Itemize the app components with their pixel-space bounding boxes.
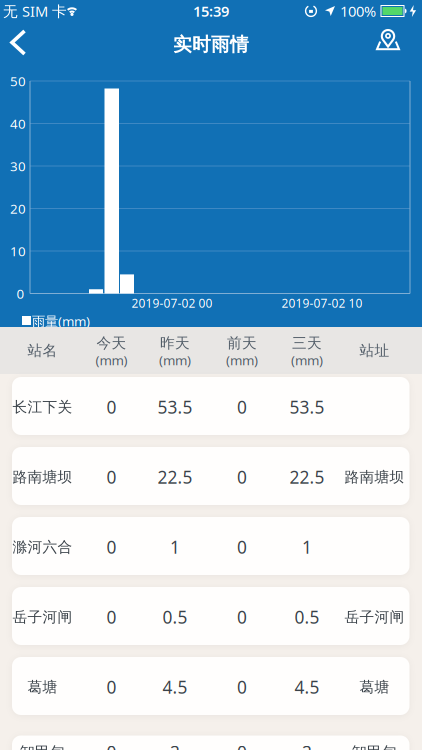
staticText: 三天: [292, 334, 322, 352]
staticText: 2: [302, 740, 312, 750]
staticText: 长江下关: [12, 398, 72, 416]
staticText: 53.5: [157, 395, 192, 418]
staticText: 2: [170, 740, 180, 750]
staticText: 22.5: [289, 465, 324, 488]
button[interactable]: 滁河六合: [12, 517, 409, 575]
staticText: 4.5: [162, 675, 187, 698]
staticText: 1: [170, 535, 180, 558]
staticText: 站名: [27, 341, 57, 359]
staticText: 50: [10, 72, 26, 90]
staticText: 雨量(mm): [32, 312, 90, 330]
button[interactable]: 长江下关: [12, 377, 409, 435]
staticText: 0: [237, 605, 247, 628]
staticText: 滁河六合: [12, 538, 72, 556]
staticText: 0: [106, 465, 116, 488]
staticText: 岳子河闸: [12, 608, 72, 626]
staticText: 1: [302, 535, 312, 558]
staticText: 0: [237, 395, 247, 418]
button[interactable]: Station map: [374, 28, 402, 54]
staticText: 0: [237, 535, 247, 558]
staticText: (mm): [291, 351, 323, 369]
button[interactable]: 岳子河闸: [12, 587, 409, 645]
staticText: 30: [10, 157, 26, 175]
staticText: (mm): [226, 351, 258, 369]
staticText: 20: [10, 200, 26, 217]
staticText: 实时雨情: [173, 33, 249, 56]
staticText: 4.5: [294, 675, 319, 698]
staticText: 22.5: [157, 465, 192, 488]
staticText: (mm): [159, 351, 191, 369]
staticText: 今天: [96, 334, 126, 352]
staticText: 岳子河闸: [344, 608, 404, 626]
button[interactable]: Back: [5, 27, 35, 57]
staticText: 站址: [359, 341, 389, 359]
staticText: 卸甲甸: [352, 743, 397, 750]
staticText: 0: [16, 285, 24, 302]
staticText: 0: [106, 740, 116, 750]
staticText: 0.5: [294, 605, 319, 628]
button[interactable]: 葛塘: [12, 657, 409, 715]
button[interactable]: 卸甲甸: [12, 735, 409, 750]
staticText: 0: [106, 535, 116, 558]
staticText: 路南塘坝: [344, 468, 404, 486]
staticText: 0: [237, 740, 247, 750]
staticText: 53.5: [289, 395, 324, 418]
staticText: 0: [106, 395, 116, 418]
staticText: 2019-07-02 00: [131, 295, 212, 311]
staticText: 40: [10, 115, 26, 132]
staticText: 0: [106, 675, 116, 698]
staticText: 0: [237, 675, 247, 698]
staticText: 路南塘坝: [12, 468, 72, 486]
button[interactable]: 路南塘坝: [12, 447, 409, 505]
staticText: 0: [106, 605, 116, 628]
staticText: 葛塘: [27, 678, 57, 696]
staticText: 0.5: [162, 605, 187, 628]
staticText: 100%: [340, 1, 376, 21]
staticText: 0: [237, 465, 247, 488]
staticText: 10: [10, 242, 26, 260]
staticText: (mm): [95, 351, 127, 369]
staticText: 无 SIM 卡: [3, 1, 67, 21]
staticText: 前天: [227, 334, 257, 352]
staticText: 卸甲甸: [20, 743, 65, 750]
staticText: 昨天: [160, 334, 190, 352]
staticText: 2019-07-02 10: [281, 295, 362, 311]
staticText: 葛塘: [359, 678, 389, 696]
staticText: 15:39: [193, 1, 229, 21]
